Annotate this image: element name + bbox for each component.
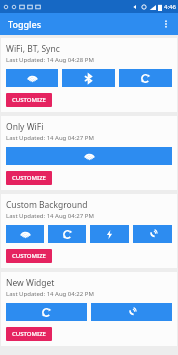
- staticText: Toggles: [8, 18, 42, 30]
- staticText: Last Updated: 14 Aug 04:22 PM: [6, 290, 94, 298]
- staticText: New Widget: [6, 277, 55, 289]
- button[interactable]: Ring: [91, 303, 172, 321]
- button[interactable]: Ring: [133, 225, 172, 243]
- staticText: 4:46: [164, 3, 176, 11]
- staticText: Last Updated: 14 Aug 04:27 PM: [6, 134, 94, 142]
- staticText: Only WiFi: [6, 121, 44, 133]
- staticText: WiFi, BT, Sync: [6, 43, 60, 55]
- button[interactable]: Wifi: [6, 69, 58, 87]
- button[interactable]: New Widget: [1, 272, 177, 346]
- button[interactable]: Custom Background: [1, 194, 177, 268]
- staticText: Last Updated: 14 Aug 04:27 PM: [6, 212, 94, 220]
- button[interactable]: CUSTOMIZE: [6, 93, 52, 107]
- button[interactable]: Toggles: [0, 13, 178, 35]
- staticText: CUSTOMIZE: [12, 330, 46, 338]
- staticText: CUSTOMIZE: [12, 252, 46, 260]
- button[interactable]: Wifi: [6, 225, 44, 243]
- staticText: Custom Background: [6, 199, 88, 211]
- staticText: CUSTOMIZE: [12, 174, 46, 182]
- staticText: Last Updated: 14 Aug 04:28 PM: [6, 56, 94, 64]
- button[interactable]: CUSTOMIZE: [6, 327, 52, 341]
- button[interactable]: CUSTOMIZE: [6, 171, 52, 185]
- button[interactable]: CUSTOMIZE: [6, 249, 52, 263]
- button[interactable]: Bluetooth: [62, 69, 115, 87]
- button[interactable]: WiFi, BT, Sync: [1, 38, 177, 112]
- button[interactable]: Sync: [48, 225, 86, 243]
- button[interactable]: More options: [158, 16, 174, 32]
- staticText: CUSTOMIZE: [12, 96, 46, 104]
- button[interactable]: Sync: [119, 69, 172, 87]
- button[interactable]: Flash: [90, 225, 129, 243]
- button[interactable]: Wifi: [6, 147, 172, 165]
- button[interactable]: Sync: [6, 303, 87, 321]
- button[interactable]: Only WiFi: [1, 116, 177, 190]
